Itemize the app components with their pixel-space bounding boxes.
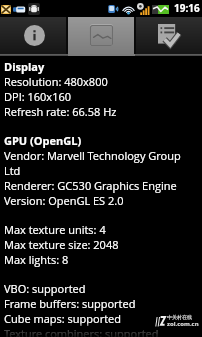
staticText: Max lights: 8 [4,252,69,267]
staticText: Resolution: 480x800 [4,74,108,89]
staticText: Version: OpenGL ES 2.0 [4,193,124,208]
staticText: Max texture size: 2048 [4,237,119,252]
button[interactable]: Graphics [68,17,135,56]
staticText: GPU (OpenGL) [4,133,82,148]
staticText: Max texture units: 4 [4,222,106,237]
staticText: Ltd [4,163,21,178]
staticText: Renderer: GC530 Graphics Engine [4,178,177,193]
staticText: Frame buffers: supported [4,296,136,311]
staticText: DPI: 160x160 [4,89,71,104]
staticText: zol.com.cn [167,320,199,328]
staticText: 中关村在线 [167,314,192,320]
staticText: Cube maps: supported [4,311,121,326]
button[interactable]: Tests [135,17,202,56]
staticText: Display [4,59,45,74]
staticText: Vendor: Marvell Technology Group [4,148,181,163]
staticText: Refresh rate: 66.58 Hz [4,104,117,119]
staticText: 19:16 [174,1,200,15]
staticText: Texture combiners: supported [4,326,159,337]
button[interactable]: Information [0,17,68,56]
staticText: VBO: supported [4,281,86,296]
